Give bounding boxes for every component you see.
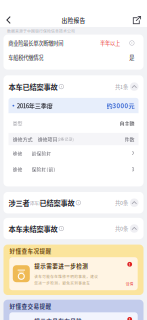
button[interactable]: 提示需要进一步检测 [3, 257, 143, 295]
staticText: 3 [131, 166, 134, 173]
staticText: 车船税代缴情况 [8, 54, 43, 61]
staticText: 涉三者 [8, 197, 29, 208]
staticText: (2条记录) [57, 136, 73, 142]
staticText: 维修 [12, 150, 22, 157]
staticText: 半年以上 [100, 39, 120, 47]
staticText: 前保险杠 [31, 150, 51, 157]
staticText: ! [129, 261, 131, 267]
staticText: ! [129, 316, 131, 320]
button[interactable]: 本车未结案事故 [3, 218, 143, 239]
staticText: 共0条 [115, 199, 128, 206]
staticText: 您进一步检测，避免买到事故车 [34, 280, 90, 286]
staticText: 约3000元 [106, 101, 134, 110]
staticText: 维修 [12, 166, 22, 173]
button[interactable]: 分享 [127, 12, 147, 27]
staticText: 好懂查交易提醒 [9, 302, 51, 310]
button[interactable]: 涉三者 [3, 192, 143, 213]
staticText: 维修项目 [37, 135, 57, 143]
staticText: (本车) [29, 200, 39, 206]
staticText: 类型 [12, 119, 22, 127]
staticText: 是 [129, 54, 134, 61]
button[interactable]: 返回 [0, 12, 17, 27]
staticText: 保险杠(前) [31, 166, 55, 173]
staticText: 详情 [126, 281, 134, 286]
staticText: 数据来源于中国银行保险信息技术公司 [7, 28, 75, 34]
button[interactable]: 本车已结案事故 [3, 75, 143, 98]
staticText: 已结案事故 [39, 197, 74, 208]
staticText: 2 [131, 150, 134, 157]
button[interactable]: 提示交易存在风险 [3, 312, 143, 320]
staticText: 出险报告 [61, 16, 85, 24]
staticText: 提示交易存在风险 [34, 317, 82, 320]
staticText: 提示需要进一步检测 [34, 262, 88, 270]
staticText: 好懂查车况提醒 [9, 247, 51, 255]
staticText: 共1条 [115, 83, 128, 90]
staticText: 2016年三季度 [17, 101, 53, 110]
staticText: 本车未结案事故 [8, 223, 57, 234]
staticText: 维修方式 [12, 135, 32, 143]
staticText: 本车已结案事故 [8, 81, 57, 92]
staticText: 自主赔 [119, 119, 134, 127]
staticText: 共0条 [115, 225, 128, 232]
staticText: 商业险最长单次断缴时间 [8, 39, 63, 47]
staticText: 件数 [124, 135, 134, 143]
staticText: 该车可能存在维修不明的事故，建议 [34, 274, 98, 279]
